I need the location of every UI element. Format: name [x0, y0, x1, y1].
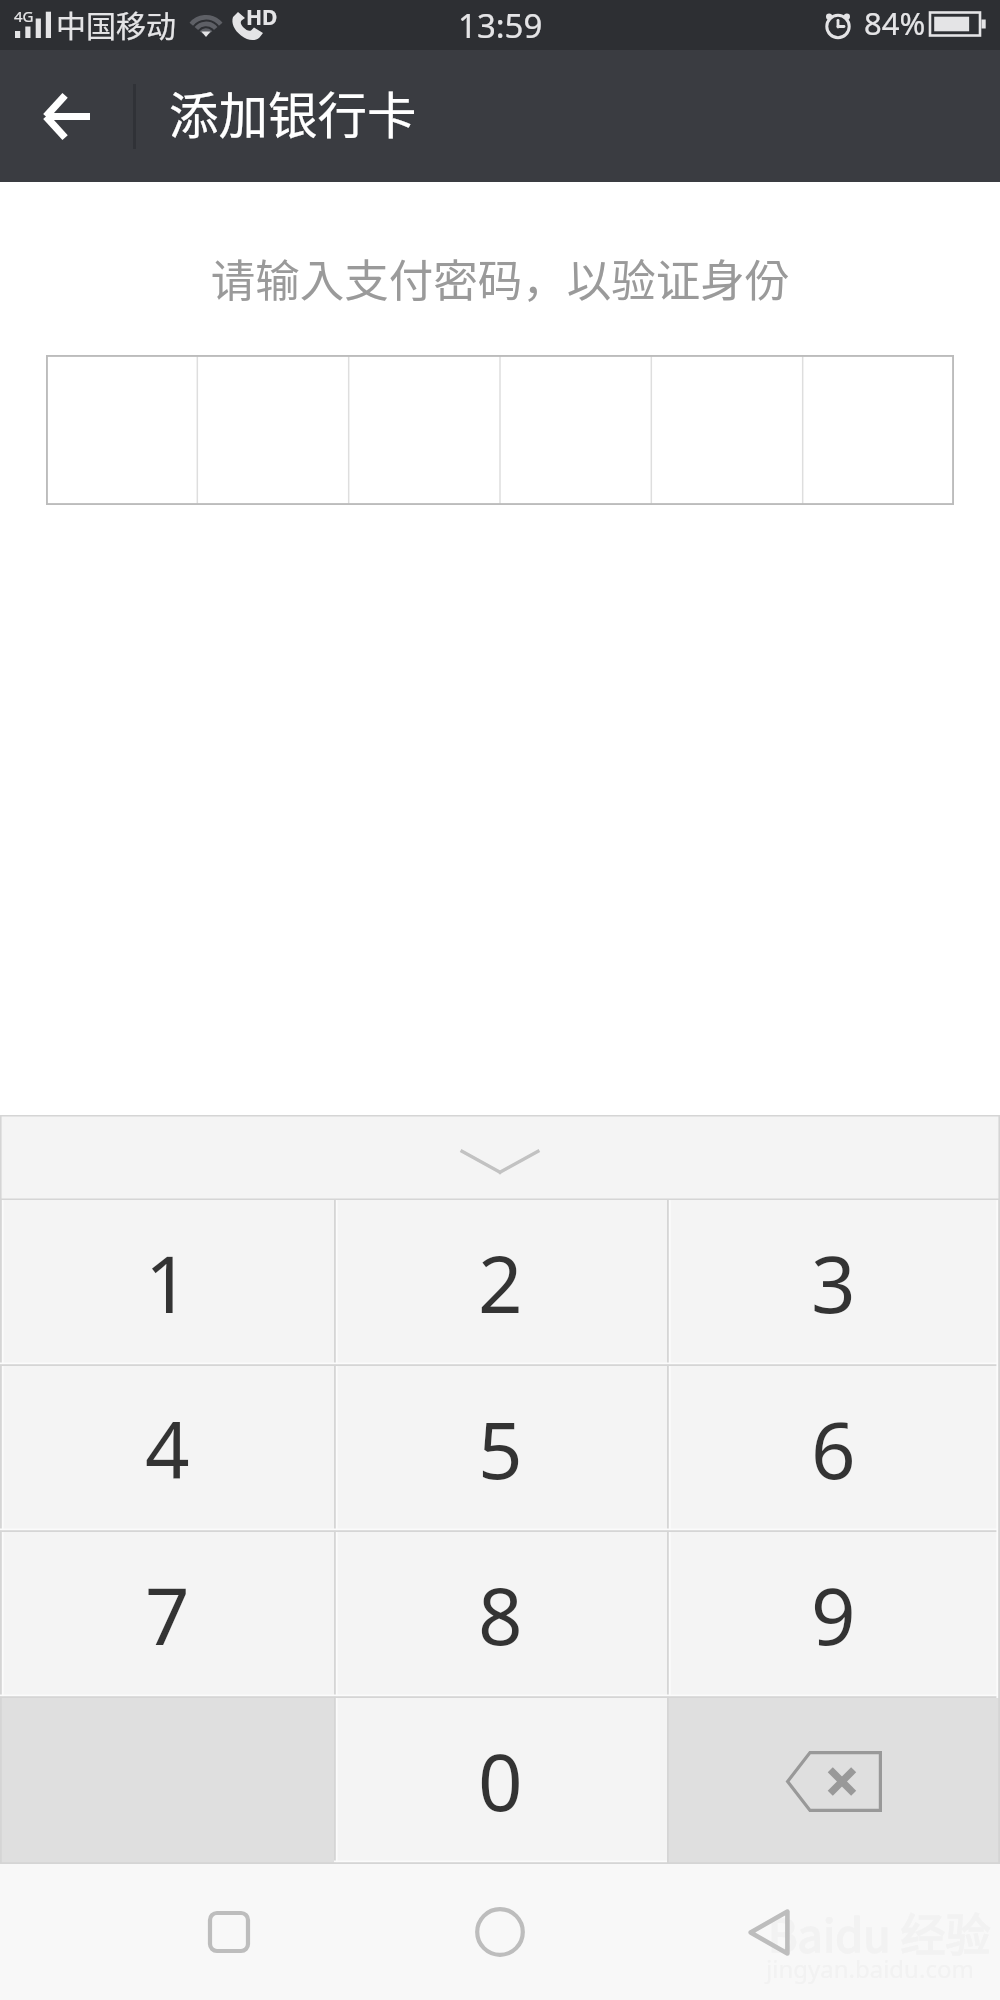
button[interactable]: 7	[0, 1532, 334, 1698]
staticText: 1	[145, 1230, 190, 1336]
staticText: 0	[478, 1728, 523, 1834]
staticText: 2	[478, 1230, 523, 1336]
button[interactable]: 4	[0, 1366, 334, 1532]
staticText: 7	[145, 1562, 190, 1668]
staticText: jingyan.baidu.com	[766, 1952, 974, 1985]
button[interactable]: 1	[0, 1200, 334, 1366]
staticText: 8	[478, 1562, 523, 1668]
button[interactable]: 2	[334, 1200, 667, 1366]
staticText: 中国移动	[56, 2, 176, 45]
button[interactable]: Home	[334, 1864, 666, 2000]
button[interactable]: Back	[0, 50, 133, 182]
button[interactable]	[46, 355, 954, 505]
staticText: 9	[811, 1562, 856, 1668]
staticText: 3	[811, 1230, 856, 1336]
staticText: 请输入支付密码，以验证身份	[0, 245, 1000, 309]
staticText: 6	[811, 1396, 856, 1502]
button[interactable]: 0	[334, 1698, 667, 1864]
button[interactable]: Back	[666, 1864, 1000, 2000]
button[interactable]: 9	[667, 1532, 1000, 1698]
staticText: 4	[145, 1396, 190, 1502]
button[interactable]: 5	[334, 1366, 667, 1532]
staticText: 4G	[14, 6, 34, 26]
staticText: 5	[478, 1396, 523, 1502]
staticText: Baidu 经验	[768, 1900, 991, 1965]
button[interactable]: Recent apps	[0, 1864, 334, 2000]
button[interactable]: 3	[667, 1200, 1000, 1366]
staticText: HD	[246, 3, 278, 32]
button[interactable]: Hide keyboard	[0, 1115, 1000, 1200]
button[interactable]: 8	[334, 1532, 667, 1698]
staticText: 84%	[864, 2, 926, 44]
button[interactable]: Backspace	[667, 1698, 1000, 1864]
staticText: 13:59	[458, 3, 543, 48]
button[interactable]: 6	[667, 1366, 1000, 1532]
staticText: 添加银行卡	[169, 77, 417, 149]
